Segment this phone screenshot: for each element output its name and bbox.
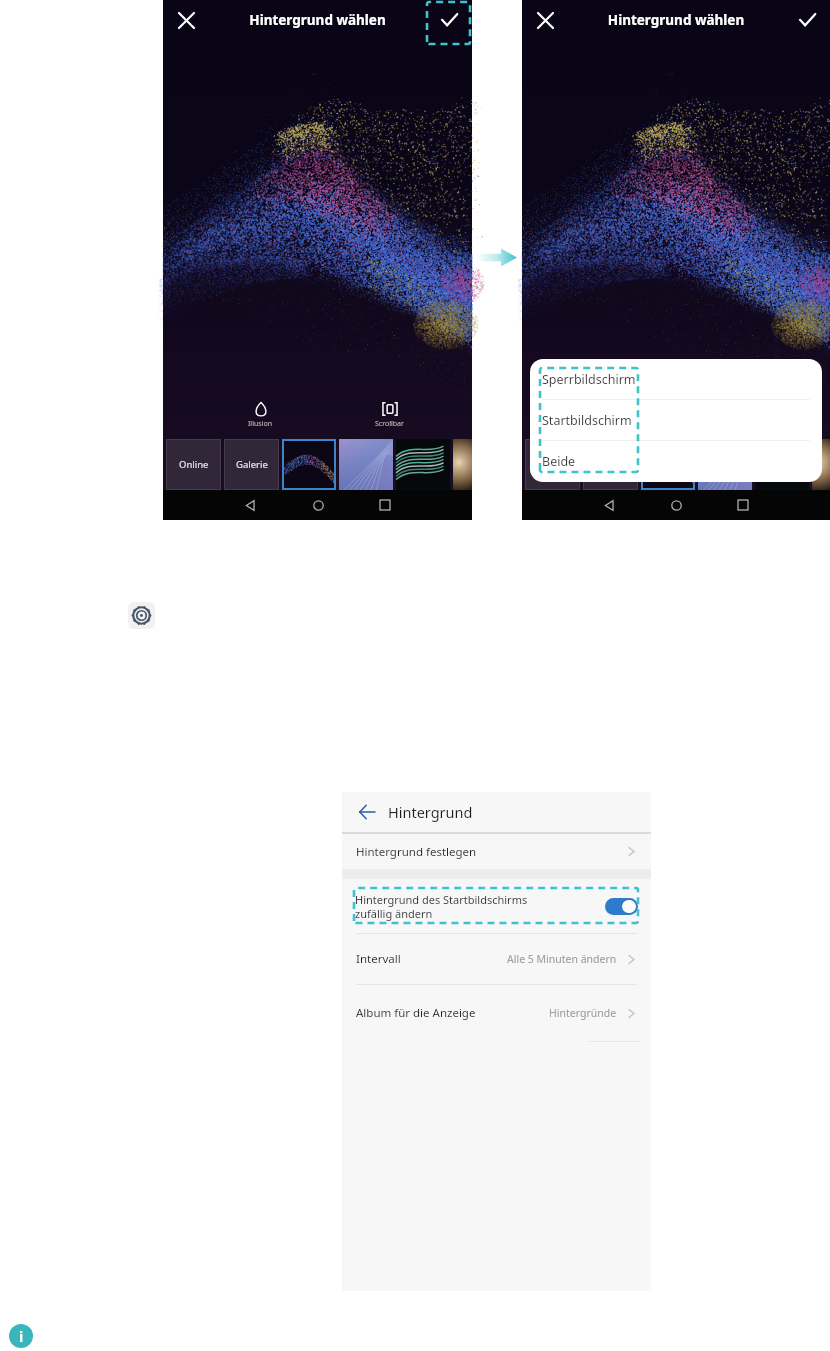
button[interactable]: Wallpaper 2 (339, 439, 393, 490)
button[interactable]: Info (9, 1324, 33, 1348)
staticText: Scrollbar (375, 419, 404, 429)
staticText: Hintergrund (388, 802, 473, 822)
staticText: Hintergrund des Startbildschirms zufälli… (355, 892, 605, 921)
button[interactable]: Illusion (601, 401, 638, 429)
button[interactable]: Toggle random wallpaper (605, 898, 638, 915)
staticText: Galerie (595, 458, 627, 471)
button[interactable]: Close (522, 0, 568, 40)
button[interactable]: Recents (728, 490, 758, 520)
staticText: Alle 5 Minuten ändern (507, 952, 617, 966)
staticText: Intervall (356, 951, 401, 967)
staticText: Album für die Anzeige (356, 1005, 476, 1021)
button[interactable]: Recents (370, 490, 400, 520)
button[interactable]: Wallpaper 4 (812, 439, 830, 490)
button[interactable]: Online (525, 439, 580, 490)
button[interactable]: Wallpaper 1 (282, 439, 336, 490)
staticText: i (19, 1327, 24, 1346)
staticText: Hintergründe (549, 1006, 617, 1020)
button[interactable]: Galerie (224, 439, 279, 490)
staticText: Sperrbildschirm (542, 371, 636, 388)
button[interactable]: Wallpaper 3 (396, 439, 450, 490)
staticText: Illusion (248, 419, 273, 429)
staticText: Hintergrund wählen (209, 11, 426, 29)
button[interactable]: Beide (530, 441, 822, 481)
button[interactable]: Wallpaper 1 (641, 439, 695, 490)
button[interactable]: Hintergrund des Startbildschirms zufälli… (342, 879, 651, 933)
staticText: Startbildschirm (542, 412, 632, 429)
button[interactable]: Confirm (784, 0, 830, 40)
button[interactable]: Wallpaper 2 (698, 439, 752, 490)
staticText: Beide (542, 453, 576, 470)
button[interactable]: Online (166, 439, 221, 490)
button[interactable]: Galerie (583, 439, 638, 490)
button[interactable]: Sperrbildschirm (530, 359, 822, 399)
staticText: Galerie (236, 458, 268, 471)
button[interactable]: Back (355, 800, 379, 824)
button[interactable]: Intervall (342, 934, 651, 984)
button[interactable]: Wallpaper 4 (453, 439, 472, 490)
button[interactable]: Wallpaper 3 (755, 439, 809, 490)
button[interactable]: Scrollbar (369, 401, 410, 429)
button[interactable]: Album für die Anzeige (342, 985, 651, 1041)
button[interactable]: Settings (128, 602, 155, 629)
button[interactable]: Confirm (426, 0, 472, 40)
button[interactable]: Home (303, 490, 333, 520)
button[interactable]: Back (235, 490, 265, 520)
button[interactable]: Back (594, 490, 624, 520)
staticText: Online (538, 458, 568, 471)
button[interactable]: Hintergrund festlegen (342, 834, 651, 869)
staticText: Hintergrund festlegen (356, 844, 477, 860)
button[interactable]: Home (661, 490, 691, 520)
staticText: Hintergrund wählen (568, 11, 784, 29)
button[interactable]: Close (163, 0, 209, 40)
button[interactable]: Illusion (242, 401, 279, 429)
button[interactable]: Startbildschirm (530, 400, 822, 440)
staticText: Online (179, 458, 209, 471)
staticText: Illusion (607, 419, 632, 429)
